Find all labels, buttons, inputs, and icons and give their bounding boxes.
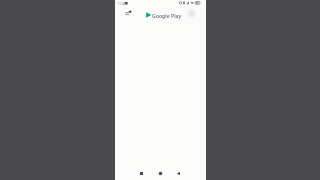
button[interactable]: [139, 171, 144, 176]
button[interactable]: Google Play: [145, 10, 182, 20]
button[interactable]: [158, 171, 163, 176]
staticText: 11:43: [117, 1, 126, 6]
button[interactable]: [187, 9, 196, 18]
staticText: Google Play: [152, 12, 182, 19]
button[interactable]: [176, 171, 181, 176]
button[interactable]: [124, 9, 133, 17]
